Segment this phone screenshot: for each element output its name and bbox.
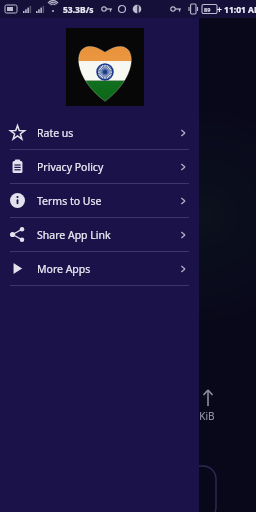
staticText: Share App Link <box>37 228 111 242</box>
other: More Apps <box>10 261 25 276</box>
staticText: + 11:01 AM <box>217 4 256 16</box>
staticText: 0 KiB <box>191 409 215 423</box>
staticText: Privacy Policy <box>37 160 104 174</box>
other: Terms to Use <box>10 193 25 208</box>
staticText: More Apps <box>37 262 91 276</box>
staticText: Terms to Use <box>37 194 102 208</box>
staticText: 53.3B/s <box>63 4 94 16</box>
button[interactable]: Terms to Use <box>0 184 199 217</box>
button[interactable]: Share App Link <box>0 218 199 251</box>
button[interactable]: More Apps <box>0 252 199 285</box>
other: Privacy Policy <box>10 159 25 174</box>
other: Share App Link <box>10 227 25 242</box>
button[interactable]: Privacy Policy <box>0 150 199 183</box>
button[interactable]: Rate us <box>0 116 199 149</box>
staticText: 89 <box>204 6 211 13</box>
staticText: Rate us <box>37 126 74 140</box>
other: Rate us <box>10 125 25 140</box>
